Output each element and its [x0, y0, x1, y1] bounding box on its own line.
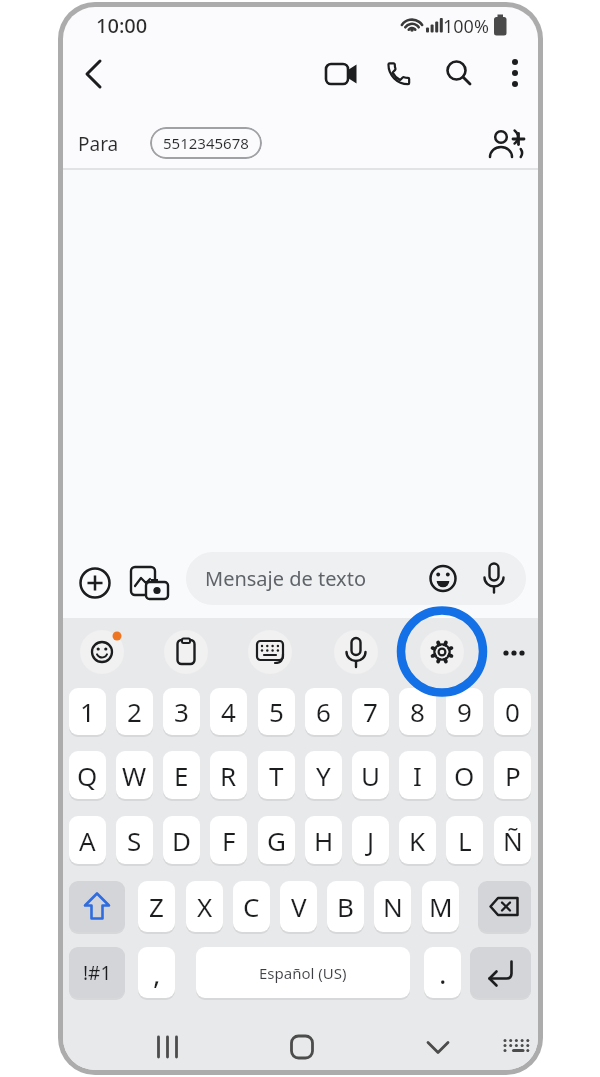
button[interactable]: C: [233, 881, 270, 932]
staticText: P: [505, 758, 521, 793]
button[interactable]: [417, 1028, 459, 1068]
button[interactable]: F: [210, 816, 247, 864]
button[interactable]: Y: [305, 751, 342, 799]
staticText: E: [174, 758, 189, 793]
button[interactable]: Español (US): [196, 947, 410, 998]
button[interactable]: [470, 947, 531, 998]
button[interactable]: O: [446, 751, 483, 799]
staticText: X: [197, 889, 213, 924]
button[interactable]: W: [116, 751, 153, 799]
button[interactable]: 7: [352, 688, 389, 735]
staticText: 7: [363, 694, 378, 729]
staticText: L: [458, 823, 472, 858]
button[interactable]: [334, 630, 378, 674]
button[interactable]: S: [116, 816, 153, 864]
button[interactable]: [164, 630, 208, 674]
staticText: 10:00: [96, 12, 148, 39]
button[interactable]: 0: [494, 688, 531, 735]
button[interactable]: U: [352, 751, 389, 799]
staticText: 6: [316, 694, 331, 729]
button[interactable]: R: [210, 751, 247, 799]
staticText: W: [122, 758, 147, 793]
staticText: Mensaje de texto: [205, 565, 366, 592]
staticText: 2: [127, 694, 142, 729]
staticText: .: [439, 954, 447, 992]
button[interactable]: 6: [305, 688, 342, 735]
button[interactable]: 3: [163, 688, 200, 735]
button[interactable]: [486, 123, 528, 165]
button[interactable]: P: [494, 751, 531, 799]
button[interactable]: J: [352, 816, 389, 864]
staticText: C: [243, 889, 260, 924]
button[interactable]: 1: [69, 688, 106, 735]
staticText: H: [314, 823, 334, 858]
staticText: 5: [269, 694, 284, 729]
button[interactable]: !#1: [69, 947, 125, 998]
staticText: G: [267, 823, 286, 858]
staticText: 1: [80, 694, 95, 729]
staticText: U: [361, 758, 381, 793]
staticText: Y: [316, 758, 331, 793]
staticText: 9: [457, 694, 472, 729]
button[interactable]: I: [399, 751, 436, 799]
button[interactable]: ,: [138, 947, 175, 998]
staticText: 100%: [443, 14, 489, 39]
button[interactable]: 8: [399, 688, 436, 735]
staticText: T: [269, 758, 284, 793]
button[interactable]: Z: [138, 881, 175, 932]
button[interactable]: 5512345678: [150, 127, 262, 159]
button[interactable]: [73, 54, 113, 96]
staticText: Q: [77, 758, 98, 793]
button[interactable]: G: [258, 816, 295, 864]
button[interactable]: M: [422, 881, 459, 932]
button[interactable]: 4: [210, 688, 247, 735]
button[interactable]: [248, 630, 292, 674]
button[interactable]: A: [69, 816, 106, 864]
staticText: B: [337, 889, 354, 924]
button[interactable]: H: [305, 816, 342, 864]
button[interactable]: [438, 52, 480, 94]
button[interactable]: [495, 1028, 537, 1068]
button[interactable]: 9: [446, 688, 483, 735]
staticText: 8: [410, 694, 425, 729]
button[interactable]: [478, 881, 531, 932]
button[interactable]: [127, 563, 171, 607]
button[interactable]: L: [446, 816, 483, 864]
button[interactable]: B: [327, 881, 364, 932]
button[interactable]: Ñ: [494, 816, 531, 864]
button[interactable]: [147, 1028, 189, 1068]
button[interactable]: K: [399, 816, 436, 864]
staticText: 4: [221, 694, 236, 729]
button[interactable]: [69, 881, 125, 932]
button[interactable]: D: [163, 816, 200, 864]
button[interactable]: [320, 53, 362, 95]
staticText: Ñ: [503, 823, 523, 858]
staticText: Z: [149, 889, 164, 924]
staticText: J: [367, 823, 375, 858]
staticText: M: [429, 889, 453, 924]
button[interactable]: [80, 630, 124, 674]
button[interactable]: 2: [116, 688, 153, 735]
button[interactable]: [420, 630, 464, 674]
staticText: 5512345678: [163, 133, 249, 153]
button[interactable]: X: [186, 881, 223, 932]
button[interactable]: 5: [258, 688, 295, 735]
staticText: A: [79, 823, 96, 858]
staticText: !#1: [83, 960, 112, 986]
button[interactable]: [75, 563, 115, 603]
button[interactable]: [492, 636, 528, 668]
staticText: I: [413, 758, 422, 793]
button[interactable]: N: [374, 881, 411, 932]
button[interactable]: [281, 1028, 323, 1068]
button[interactable]: T: [258, 751, 295, 799]
button[interactable]: .: [424, 947, 461, 998]
button[interactable]: E: [163, 751, 200, 799]
button[interactable]: Mensaje de texto: [186, 552, 526, 605]
staticText: Para: [78, 131, 119, 157]
button[interactable]: [378, 53, 420, 95]
staticText: Español (US): [259, 963, 347, 983]
staticText: S: [127, 823, 142, 858]
button[interactable]: Q: [69, 751, 106, 799]
button[interactable]: V: [280, 881, 317, 932]
button[interactable]: [497, 52, 533, 94]
